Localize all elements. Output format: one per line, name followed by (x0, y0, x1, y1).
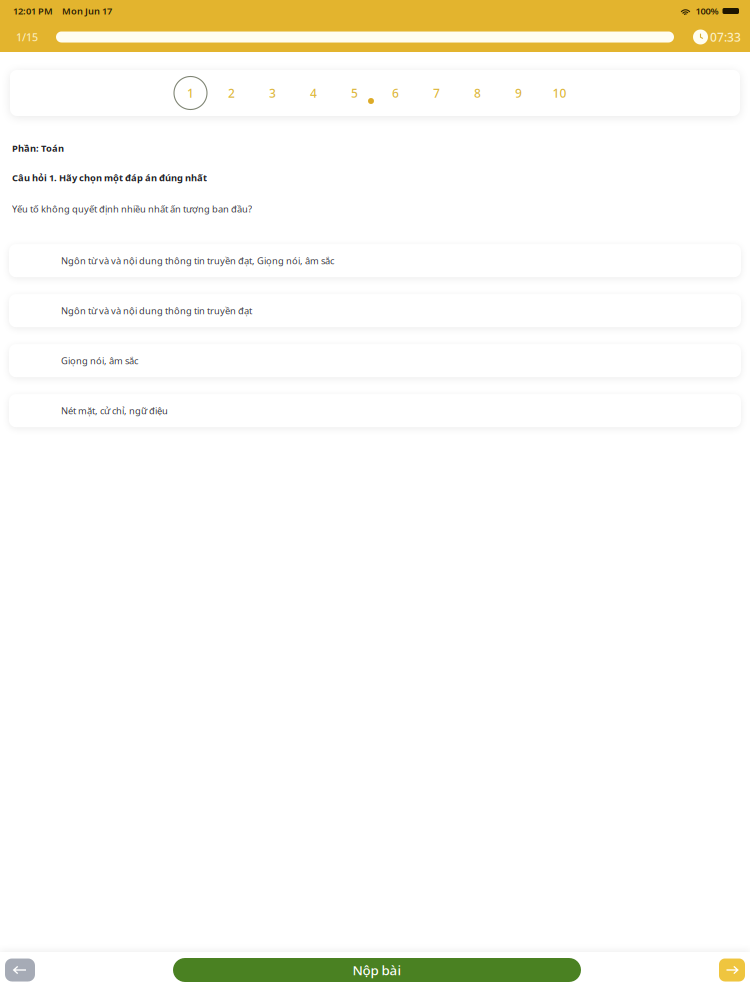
button[interactable]: 9 (498, 70, 539, 116)
staticText: 10 (552, 85, 566, 101)
staticText: Nộp bài (352, 961, 401, 979)
staticText: 1/15 (16, 30, 38, 44)
staticText: 5 (351, 85, 358, 101)
button[interactable]: 10 (539, 70, 580, 116)
staticText: 2 (228, 85, 235, 101)
staticText: Nét mặt, cử chỉ, ngữ điệu (61, 404, 168, 417)
staticText: 4 (310, 85, 317, 101)
button[interactable]: 7 (416, 70, 457, 116)
button[interactable]: 5 (334, 70, 375, 116)
staticText: Câu hỏi 1. Hãy chọn một đáp án đúng nhất (12, 171, 207, 184)
staticText: 100% (695, 5, 718, 17)
button[interactable]: 1 (170, 70, 211, 116)
button[interactable]: Ngôn từ và và nội dung thông tin truyền … (9, 294, 741, 327)
staticText: Ngôn từ và và nội dung thông tin truyền … (61, 304, 252, 317)
staticText: 6 (392, 85, 399, 101)
staticText: Phần: Toán (12, 142, 64, 154)
staticText: Giọng nói, âm sắc (61, 354, 138, 367)
staticText: 07:33 (710, 29, 741, 45)
button[interactable]: 3 (252, 70, 293, 116)
button[interactable]: Previous question (5, 958, 35, 981)
button[interactable]: Next question (719, 958, 745, 981)
staticText: 3 (269, 85, 276, 101)
button[interactable]: 8 (457, 70, 498, 116)
button[interactable]: 2 (211, 70, 252, 116)
button[interactable]: 4 (293, 70, 334, 116)
staticText: 9 (515, 85, 522, 101)
staticText: Yếu tố không quyết định nhiều nhất ấn tư… (12, 203, 252, 215)
button[interactable]: Nộp bài (173, 958, 581, 982)
button[interactable]: Giọng nói, âm sắc (9, 344, 741, 377)
staticText: Ngôn từ và và nội dung thông tin truyền … (61, 254, 334, 267)
staticText: 8 (474, 85, 481, 101)
button[interactable]: Ngôn từ và và nội dung thông tin truyền … (9, 244, 741, 277)
staticText: Mon Jun 17 (62, 5, 112, 17)
staticText: 12:01 PM (13, 5, 53, 17)
button[interactable]: 6 (375, 70, 416, 116)
button[interactable]: Nét mặt, cử chỉ, ngữ điệu (9, 394, 741, 427)
staticText: 1 (187, 85, 194, 101)
staticText: 7 (433, 85, 440, 101)
